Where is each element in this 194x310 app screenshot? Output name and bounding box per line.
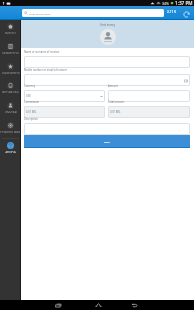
staticText: RECARGAS — [2, 90, 19, 93]
button[interactable]: Recent apps — [53, 300, 63, 310]
staticText: ENVIAR — [5, 110, 17, 113]
button[interactable]: INICIO — [0, 23, 21, 34]
button[interactable]: Amount — [108, 84, 190, 102]
button[interactable]: FAVORITOS — [0, 63, 21, 74]
button[interactable]: AYUDA — [0, 142, 21, 153]
button[interactable]: Commission — [24, 100, 105, 118]
staticText: 34% — [162, 1, 169, 6]
button[interactable]: Description — [24, 117, 190, 135]
staticText: 0.01 BRL — [26, 110, 37, 114]
staticText: Mobile number or email of receiver — [24, 68, 67, 72]
staticText: Send — [104, 140, 110, 143]
staticText: Commission — [24, 100, 40, 104]
button[interactable]: RECARGAS — [0, 82, 21, 93]
button[interactable]: CONFIGURAR — [0, 122, 21, 133]
button[interactable]: Mobile number or email of receiver — [24, 68, 190, 86]
button[interactable]: Currency — [24, 84, 105, 102]
staticText: Send money — [100, 23, 116, 27]
button[interactable]: Total amount — [108, 100, 190, 118]
staticText: CONFIGURAR — [0, 130, 21, 133]
button[interactable]: Pick contact — [183, 78, 188, 83]
button[interactable]: Refresh — [181, 9, 192, 20]
staticText: 0.01 BRL — [110, 110, 121, 114]
staticText: FAVORITOS — [2, 71, 20, 74]
button[interactable]: Name or surname of receiver — [24, 50, 190, 68]
staticText: Total amount — [108, 100, 125, 104]
button[interactable]: Back — [129, 300, 139, 310]
staticText: Amount — [108, 84, 118, 88]
staticText: Description — [24, 117, 38, 121]
staticText: 2.11 € — [167, 10, 176, 14]
button[interactable]: ENVIAR — [0, 102, 21, 113]
button[interactable]: SERVICIOS — [0, 43, 21, 54]
button[interactable]: Enter service name — [22, 9, 164, 17]
staticText: Currency — [24, 84, 35, 88]
button[interactable]: Send — [24, 135, 190, 148]
staticText: AYUDA — [5, 150, 16, 153]
staticText: US$ — [26, 94, 31, 98]
staticText: SERVICIOS — [2, 51, 19, 54]
button[interactable]: Home — [93, 300, 103, 310]
staticText: INICIO — [5, 31, 16, 34]
staticText: Name or surname of receiver — [24, 50, 60, 54]
staticText: 1:37 PM — [175, 0, 193, 6]
staticText: Enter service name — [29, 12, 51, 15]
